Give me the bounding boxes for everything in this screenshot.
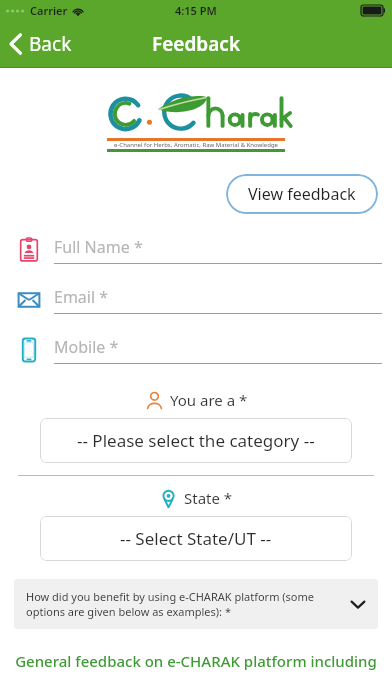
staticText: Back — [29, 31, 72, 57]
other: Email — [16, 287, 42, 313]
button[interactable]: Back — [0, 25, 86, 63]
staticText: Mobile * — [54, 336, 119, 358]
staticText: -- Please select the category -- — [77, 429, 315, 452]
staticText: You are a * — [170, 390, 248, 410]
staticText: e-Channel for Herbs, Aromatic, Raw Mater… — [107, 141, 285, 149]
staticText: -- Select State/UT -- — [120, 527, 272, 550]
staticText: View feedback — [248, 183, 356, 205]
other: Full name — [16, 237, 42, 263]
button[interactable]: How did you benefit by using e-CHARAK pl… — [14, 579, 378, 629]
other: Mobile — [16, 337, 42, 363]
staticText: 4:15 PM — [175, 3, 217, 18]
other: You are a — [145, 391, 164, 410]
staticText: General feedback on e-CHARAK platform in… — [0, 651, 392, 671]
staticText: Email * — [54, 286, 109, 308]
button[interactable]: -- Please select the category -- — [40, 418, 352, 463]
staticText: How did you benefit by using e-CHARAK pl… — [26, 589, 340, 619]
button[interactable]: View feedback — [226, 174, 378, 214]
staticText: Full Name * — [54, 236, 143, 258]
staticText: State * — [184, 488, 233, 508]
other: Expand — [348, 594, 368, 614]
button[interactable]: Full name — [0, 236, 392, 264]
button[interactable]: Email — [0, 286, 392, 314]
staticText: Carrier — [30, 3, 68, 18]
button[interactable]: Mobile — [0, 336, 392, 364]
button[interactable]: -- Select State/UT -- — [40, 516, 352, 561]
staticText: Feedback — [152, 31, 241, 57]
other: State — [159, 489, 178, 508]
